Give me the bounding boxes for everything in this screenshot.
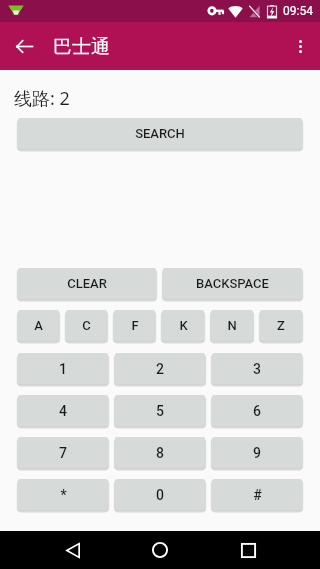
button[interactable]: F: [114, 310, 155, 341]
staticText: Z: [277, 318, 285, 333]
staticText: N: [227, 318, 237, 333]
button[interactable]: More options: [280, 22, 320, 70]
button[interactable]: CLEAR: [18, 268, 156, 299]
staticText: 09:54: [283, 4, 313, 18]
button[interactable]: 0: [115, 479, 205, 510]
staticText: 2: [156, 361, 164, 377]
staticText: SEARCH: [135, 126, 185, 141]
button[interactable]: 9: [212, 437, 302, 468]
staticText: CLEAR: [67, 276, 107, 291]
staticText: #: [253, 487, 262, 503]
button[interactable]: Recent apps: [220, 531, 277, 569]
button[interactable]: *: [18, 479, 108, 510]
button[interactable]: Navigate up: [0, 22, 48, 70]
button[interactable]: Z: [260, 310, 302, 341]
button[interactable]: N: [211, 310, 253, 341]
staticText: K: [179, 318, 188, 333]
staticText: 1: [59, 361, 67, 377]
button[interactable]: Back: [43, 531, 100, 569]
staticText: 巴士通: [53, 35, 110, 59]
staticText: *: [60, 487, 67, 503]
staticText: 4: [59, 403, 67, 419]
staticText: 3: [253, 361, 261, 377]
button[interactable]: SEARCH: [18, 118, 302, 149]
button[interactable]: 1: [18, 353, 108, 384]
staticText: 0: [156, 487, 164, 503]
button[interactable]: 7: [18, 437, 108, 468]
button[interactable]: A: [18, 310, 59, 341]
button[interactable]: 3: [212, 353, 302, 384]
staticText: 7: [59, 445, 67, 461]
button[interactable]: 6: [212, 395, 302, 426]
staticText: 9: [253, 445, 261, 461]
button[interactable]: BACKSPACE: [163, 268, 302, 299]
staticText: BACKSPACE: [196, 276, 269, 291]
staticText: 线路: 2: [14, 86, 70, 111]
staticText: F: [131, 318, 139, 333]
staticText: A: [34, 318, 43, 333]
button[interactable]: 4: [18, 395, 108, 426]
staticText: 8: [156, 445, 164, 461]
button[interactable]: 8: [115, 437, 205, 468]
button[interactable]: #: [212, 479, 302, 510]
staticText: C: [82, 318, 91, 333]
staticText: 5: [156, 403, 164, 419]
staticText: 6: [253, 403, 261, 419]
button[interactable]: K: [162, 310, 204, 341]
button[interactable]: 2: [115, 353, 205, 384]
button[interactable]: C: [66, 310, 107, 341]
button[interactable]: 5: [115, 395, 205, 426]
button[interactable]: Home: [131, 531, 188, 569]
